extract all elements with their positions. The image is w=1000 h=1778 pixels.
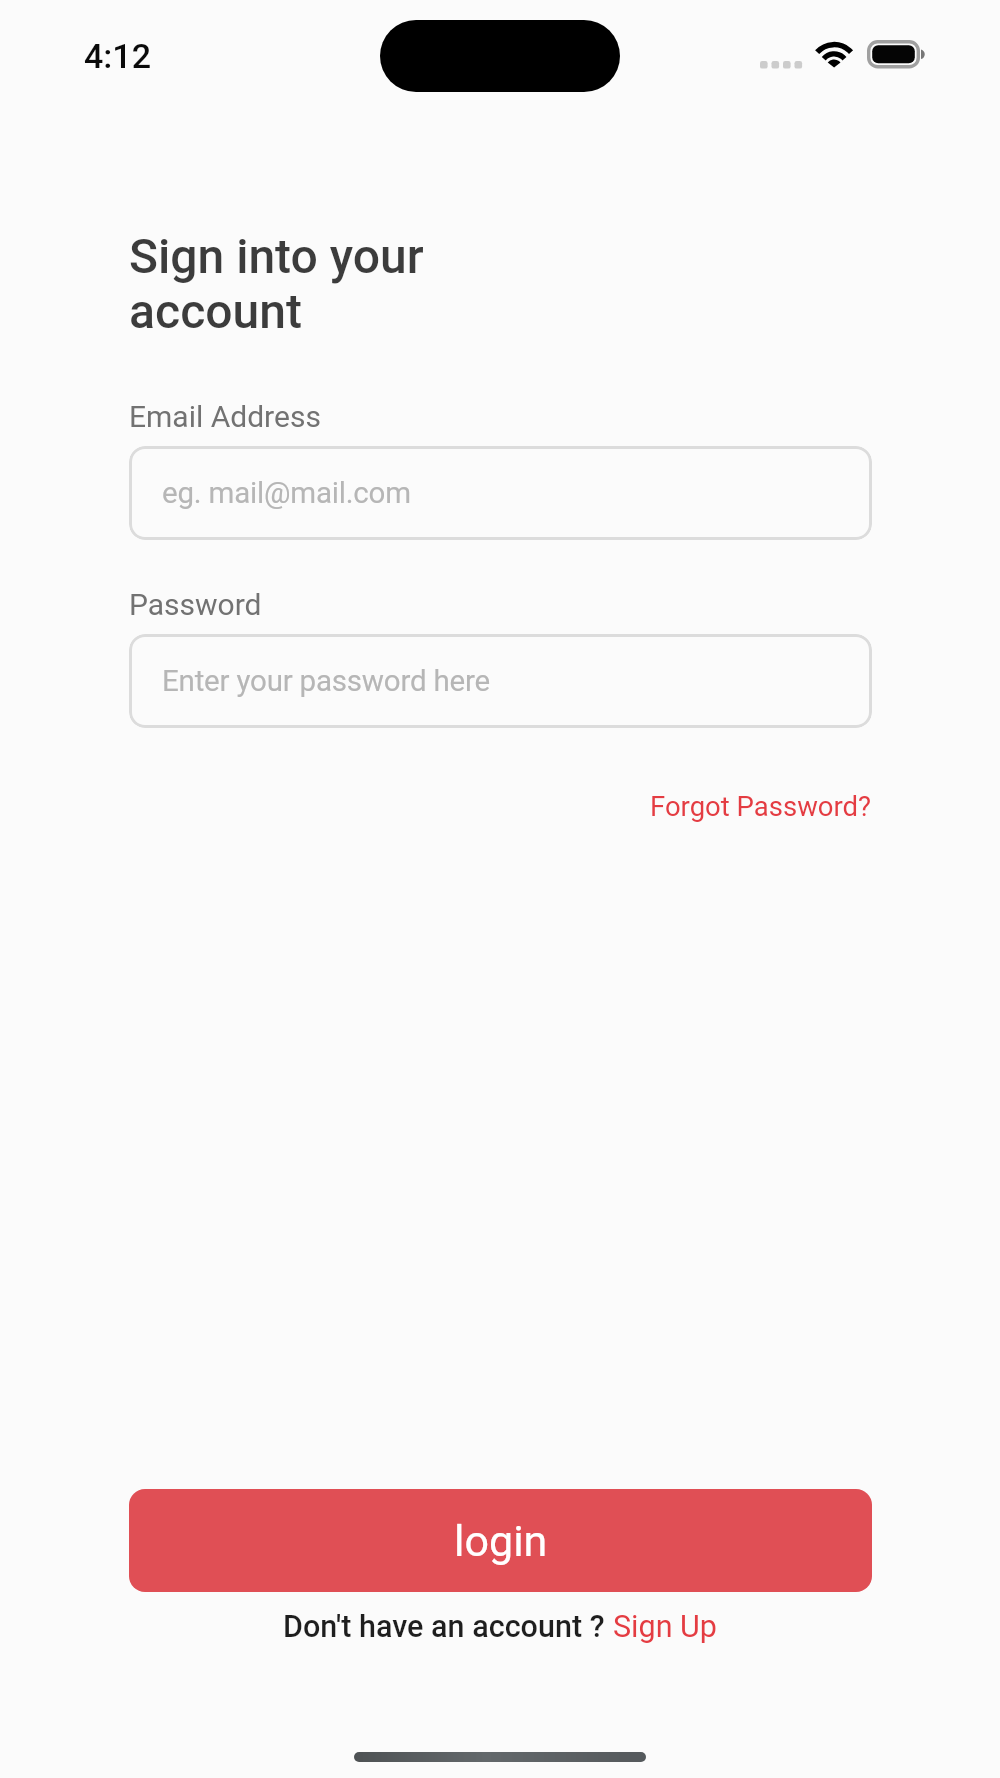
other: Wi-Fi	[812, 38, 858, 72]
staticText: login	[454, 1516, 548, 1566]
button[interactable]: eg. mail@mail.com	[129, 446, 872, 540]
button[interactable]: login	[129, 1489, 872, 1592]
staticText: Password	[129, 587, 262, 622]
other: Cellular signal	[758, 59, 804, 71]
button[interactable]: Sign Up	[613, 1609, 717, 1645]
button[interactable]: Enter your password here	[129, 634, 872, 728]
staticText: Sign Up	[613, 1609, 717, 1645]
button[interactable]: Forgot Password?	[650, 784, 872, 828]
staticText: Don't have an account ?	[283, 1609, 613, 1645]
staticText: Email Address	[129, 399, 321, 434]
staticText: Sign into your account	[129, 228, 424, 340]
staticText: Enter your password here	[162, 664, 490, 699]
other: Battery	[867, 40, 929, 70]
staticText: eg. mail@mail.com	[162, 476, 411, 511]
staticText: 4:12	[84, 36, 151, 76]
staticText: Forgot Password?	[650, 790, 872, 822]
